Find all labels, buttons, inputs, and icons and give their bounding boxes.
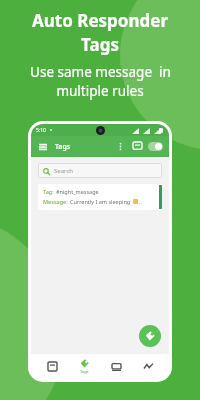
button[interactable]: Tag: <box>38 184 162 210</box>
staticText: Tags <box>80 369 89 374</box>
staticText: Tags <box>81 33 119 56</box>
button[interactable]: Replies <box>39 354 65 378</box>
button[interactable]: Tags <box>71 354 97 378</box>
staticText: Auto Responder <box>32 9 168 32</box>
staticText: Use same message in <box>30 63 171 81</box>
staticText: #night_message <box>56 188 99 195</box>
button[interactable]: Search <box>38 163 162 178</box>
staticText: Message: <box>43 198 68 205</box>
staticText: Currently I am sleeping <box>70 198 131 205</box>
button[interactable]: Add tag <box>139 325 161 347</box>
button[interactable]: Stats <box>135 354 161 378</box>
staticText: Search <box>54 167 73 175</box>
staticText: multiple rules <box>56 82 144 100</box>
staticText: Tags <box>55 142 71 152</box>
button[interactable]: Messages <box>131 140 144 153</box>
staticText: 5:10 <box>36 127 46 134</box>
staticText: .. <box>139 198 142 205</box>
staticText: Tag: <box>43 188 54 195</box>
button[interactable]: Toggle auto reply <box>148 142 163 151</box>
button[interactable]: Logs <box>103 354 129 378</box>
button[interactable]: Open navigation menu <box>37 141 49 153</box>
button[interactable]: More options <box>114 140 127 153</box>
